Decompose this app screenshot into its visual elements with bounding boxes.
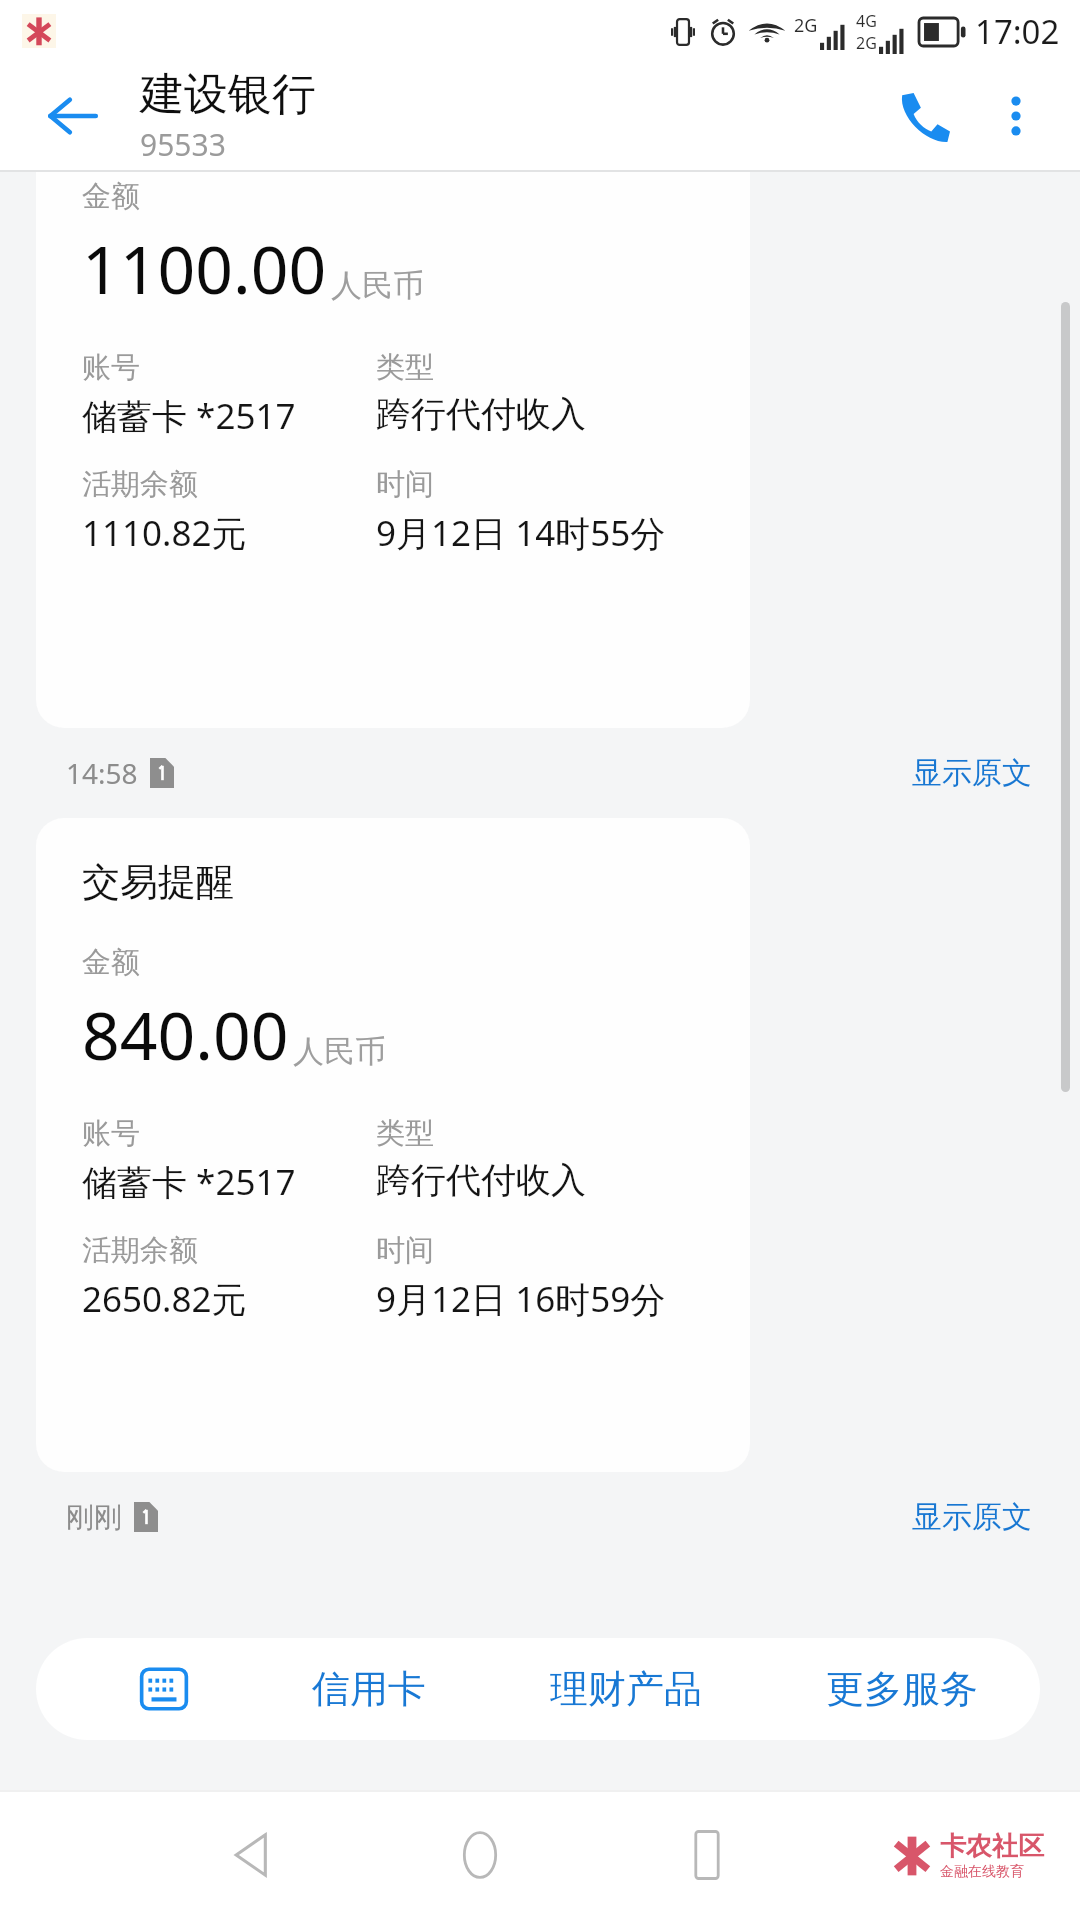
staticText: 2650.82元 xyxy=(82,1275,247,1323)
staticText: 账号 xyxy=(82,349,140,386)
staticText: 交易提醒 xyxy=(82,858,234,906)
staticText: 金融在线教育 xyxy=(940,1863,1024,1881)
staticText: 2G xyxy=(856,32,877,54)
staticText: 95533 xyxy=(140,124,226,165)
button[interactable]: 金额 xyxy=(36,172,750,728)
staticText: 显示原文 xyxy=(912,1498,1032,1536)
button[interactable]: Recent apps xyxy=(593,1790,820,1920)
staticText: 跨行代付收入 xyxy=(376,1158,586,1202)
staticText: 9月12日 14时55分 xyxy=(376,509,666,557)
staticText: 储蓄卡 *2517 xyxy=(82,1158,296,1206)
staticText: 理财产品 xyxy=(550,1665,702,1713)
staticText: 840.00 xyxy=(82,989,289,1079)
button[interactable]: More options xyxy=(970,70,1062,162)
staticText: 卡农社区 xyxy=(940,1830,1044,1863)
staticText: 更多服务 xyxy=(826,1665,978,1713)
staticText: 活期余额 xyxy=(82,1232,198,1269)
staticText: 金额 xyxy=(82,944,140,981)
button[interactable]: 信用卡 xyxy=(304,1651,434,1727)
button[interactable]: Back xyxy=(140,1790,366,1920)
button[interactable]: 理财产品 xyxy=(542,1651,710,1727)
staticText: 4G xyxy=(856,10,877,32)
button[interactable]: Back xyxy=(30,74,114,158)
button[interactable]: 显示原文 xyxy=(908,750,1036,796)
staticText: 账号 xyxy=(82,1115,140,1152)
staticText: 类型 xyxy=(376,1115,434,1152)
staticText: 刚刚 xyxy=(66,1500,122,1535)
staticText: 时间 xyxy=(376,466,434,503)
button[interactable]: 显示原文 xyxy=(908,1494,1036,1540)
staticText: 储蓄卡 *2517 xyxy=(82,392,296,440)
staticText: 显示原文 xyxy=(912,754,1032,792)
staticText: 2G xyxy=(794,13,818,38)
staticText: 1110.82元 xyxy=(82,509,247,557)
staticText: 人民币 xyxy=(293,1032,386,1071)
staticText: 17:02 xyxy=(975,9,1060,54)
staticText: 金额 xyxy=(82,178,140,215)
staticText: 1100.00 xyxy=(82,223,327,313)
staticText: 人民币 xyxy=(331,266,424,305)
staticText: 9月12日 16时59分 xyxy=(376,1275,666,1323)
staticText: 活期余额 xyxy=(82,466,198,503)
staticText: 建设银行 xyxy=(140,67,316,122)
button[interactable]: Call xyxy=(878,70,970,162)
staticText: 时间 xyxy=(376,1232,434,1269)
staticText: 跨行代付收入 xyxy=(376,392,586,436)
button[interactable]: 更多服务 xyxy=(818,1651,986,1727)
button[interactable]: Keyboard xyxy=(132,1657,196,1721)
button[interactable]: Home xyxy=(366,1790,593,1920)
staticText: 类型 xyxy=(376,349,434,386)
staticText: 14:58 xyxy=(66,754,138,792)
staticText: 信用卡 xyxy=(312,1665,426,1713)
button[interactable]: 交易提醒 xyxy=(36,818,750,1472)
